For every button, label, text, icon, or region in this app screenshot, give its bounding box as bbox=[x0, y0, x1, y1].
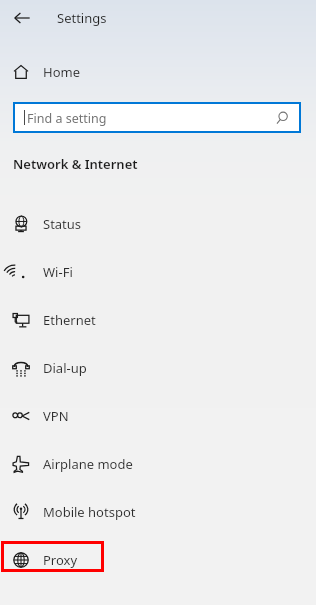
staticText: Wi-Fi bbox=[43, 263, 73, 281]
button[interactable]: Ethernet bbox=[0, 305, 316, 335]
button[interactable]: Airplane mode bbox=[0, 449, 316, 479]
button[interactable]: Home bbox=[0, 58, 316, 86]
button[interactable]: Back bbox=[6, 4, 38, 32]
staticText: Settings bbox=[57, 9, 107, 27]
button[interactable]: Status bbox=[0, 209, 316, 239]
staticText: Proxy bbox=[43, 551, 78, 569]
button[interactable]: Find a setting bbox=[13, 102, 301, 133]
staticText: Home bbox=[43, 63, 80, 81]
button[interactable]: Mobile hotspot bbox=[0, 497, 316, 527]
button[interactable]: VPN bbox=[0, 401, 316, 431]
staticText: Status bbox=[43, 215, 82, 233]
staticText: Ethernet bbox=[43, 311, 96, 329]
staticText: VPN bbox=[43, 407, 69, 425]
button[interactable]: Proxy bbox=[0, 545, 316, 575]
button[interactable]: Dial-up bbox=[0, 353, 316, 383]
staticText: Mobile hotspot bbox=[43, 503, 136, 521]
staticText: Find a setting bbox=[27, 110, 107, 127]
staticText: Dial-up bbox=[43, 359, 87, 377]
button[interactable]: Wi-Fi bbox=[0, 257, 316, 287]
staticText: Airplane mode bbox=[43, 455, 133, 473]
staticText: Network & Internet bbox=[13, 155, 138, 173]
